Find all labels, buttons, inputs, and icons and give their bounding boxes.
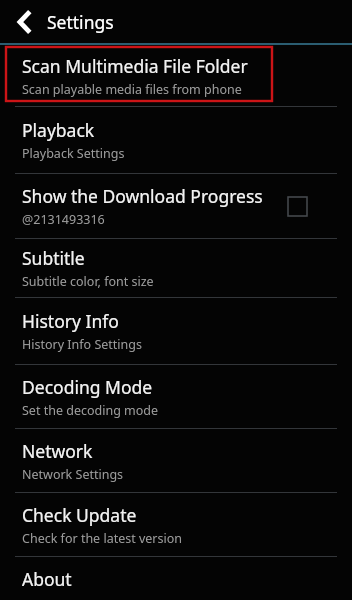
staticText: Scan Multimedia File Folder — [22, 54, 248, 78]
staticText: Check Update — [22, 503, 137, 527]
button[interactable]: History Info — [0, 298, 352, 364]
staticText: History Info — [22, 309, 119, 333]
staticText: Scan playable media files from phone — [22, 81, 242, 98]
staticText: Settings — [47, 10, 114, 34]
button[interactable]: About — [0, 557, 352, 600]
staticText: Playback Settings — [22, 145, 125, 162]
staticText: Check for the latest version — [22, 530, 183, 547]
staticText: Network Settings — [22, 466, 124, 483]
staticText: Decoding Mode — [22, 375, 153, 399]
staticText: Show the Download Progress — [22, 184, 263, 208]
staticText: Set the decoding mode — [22, 402, 159, 419]
staticText: Network — [22, 439, 93, 463]
staticText: About — [22, 567, 72, 591]
staticText: History Info Settings — [22, 336, 142, 353]
button[interactable]: Playback — [0, 107, 352, 173]
staticText: Subtitle — [22, 246, 85, 270]
button[interactable]: Network — [0, 429, 352, 492]
staticText: @2131493316 — [22, 211, 105, 228]
button[interactable]: Show the Download Progress toggle — [284, 193, 310, 219]
staticText: Playback — [22, 118, 95, 142]
button[interactable]: Subtitle — [0, 239, 352, 297]
button[interactable]: Decoding Mode — [0, 365, 352, 428]
staticText: Subtitle color, font size — [22, 273, 154, 290]
button[interactable]: Check Update — [0, 493, 352, 556]
button[interactable]: Show the Download Progress — [0, 174, 352, 238]
button[interactable]: Scan Multimedia File Folder — [0, 45, 352, 106]
button[interactable]: Back — [4, 1, 46, 43]
